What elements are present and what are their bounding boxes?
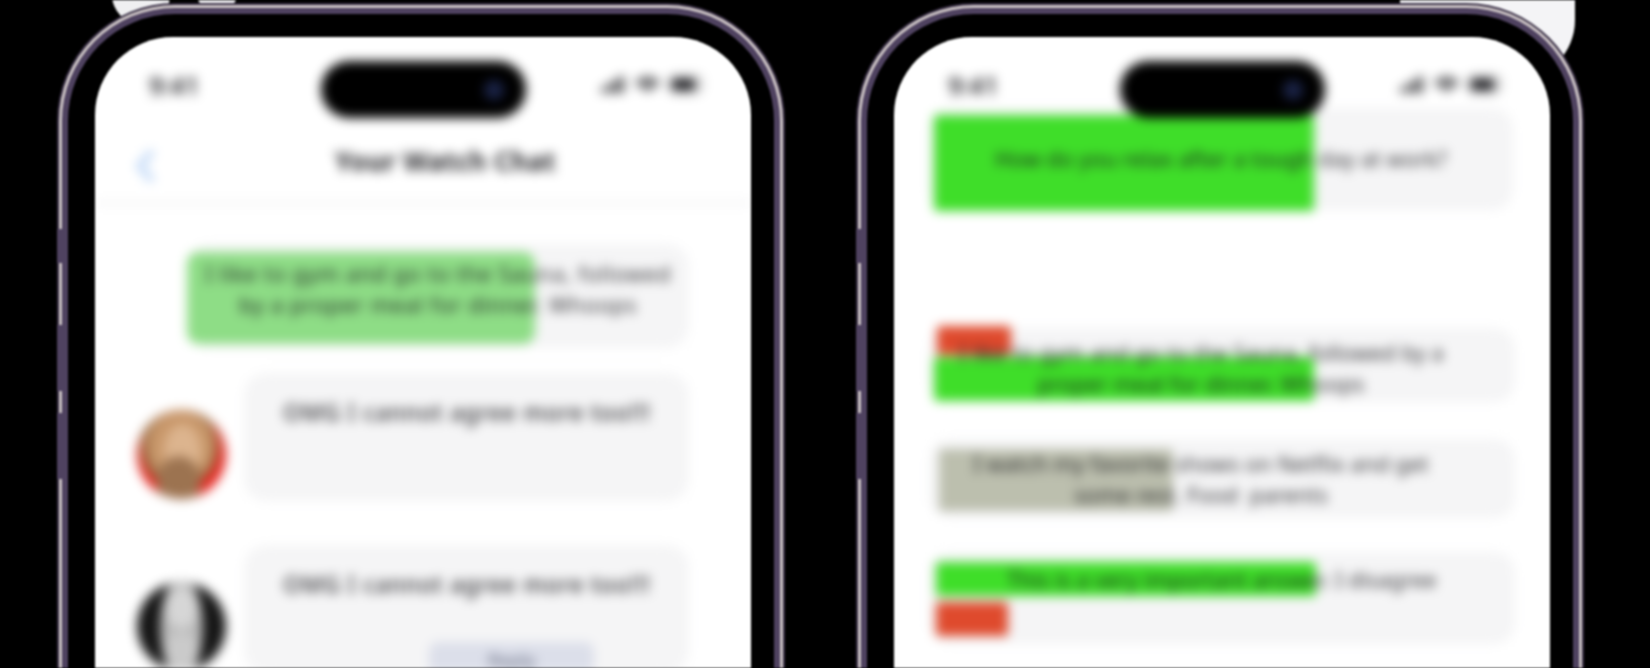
button[interactable]: OMG I cannot agree more too!!! (244, 373, 689, 501)
staticText: 9:41 (149, 68, 200, 102)
button[interactable]: Reply (429, 642, 594, 668)
staticText: I like to gym and go to the Sauna, follo… (199, 259, 677, 319)
staticText: I watch my favorite shows on Netflix and… (951, 449, 1451, 509)
button[interactable]: OMG I cannot agree more too!!! (244, 545, 689, 668)
button[interactable] (929, 439, 1515, 518)
staticText: 9:41 (948, 68, 999, 102)
button[interactable] (187, 244, 689, 348)
staticText: OMG I cannot agree more too!!! (283, 397, 651, 428)
staticText: I like to gym and go to the Sauna, follo… (951, 338, 1451, 398)
staticText: This is a very important answer. I disag… (1007, 565, 1437, 595)
staticText: Reply (488, 647, 536, 668)
staticText: OMG I cannot agree more too!!! (283, 569, 651, 600)
staticText: Your Watch Chat (335, 143, 556, 178)
button[interactable]: Back (122, 142, 169, 189)
staticText: How do you relax after a tough day at wo… (929, 144, 1513, 174)
button[interactable] (929, 328, 1515, 402)
button[interactable] (929, 552, 1515, 644)
button[interactable] (929, 108, 1513, 210)
